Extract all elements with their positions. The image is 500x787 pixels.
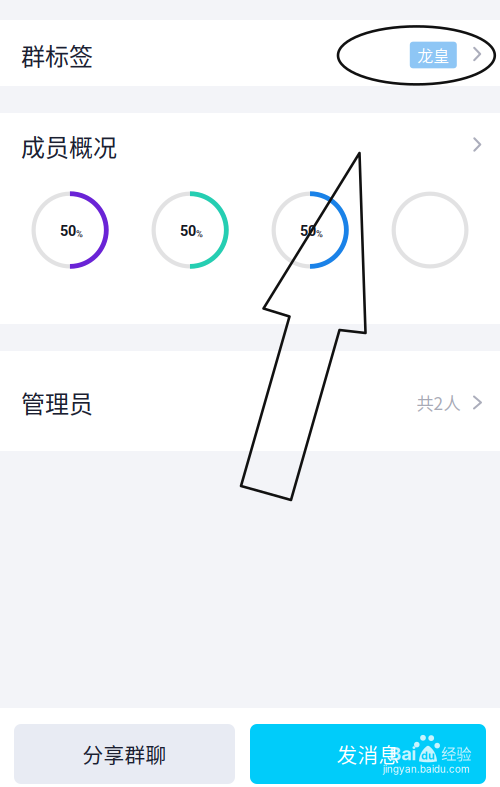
staticText: 发消息 xyxy=(336,739,399,769)
staticText: 50 xyxy=(180,223,196,239)
button[interactable]: 群标签 xyxy=(0,20,500,86)
staticText: 共2人 xyxy=(416,390,460,415)
staticText: % xyxy=(196,229,203,239)
staticText: 群标签 xyxy=(21,38,93,72)
staticText: 管理员 xyxy=(21,385,93,420)
staticText: 龙皇 xyxy=(417,43,449,67)
staticText: 分享群聊 xyxy=(82,739,166,769)
staticText: du xyxy=(421,749,435,762)
staticText: 成员概况 xyxy=(21,129,117,163)
button[interactable]: 成员概况 xyxy=(0,113,500,181)
staticText: jingyan.baidu.com xyxy=(383,763,470,775)
staticText: % xyxy=(76,229,83,239)
staticText: 50 xyxy=(300,223,316,239)
staticText: Bai xyxy=(389,743,416,765)
button[interactable]: 发消息 xyxy=(250,724,486,784)
button[interactable]: 分享群聊 xyxy=(14,724,235,784)
button[interactable]: 管理员 xyxy=(0,351,500,451)
staticText: % xyxy=(316,229,323,239)
staticText: 50 xyxy=(60,223,76,239)
staticText: 经验 xyxy=(441,742,471,764)
